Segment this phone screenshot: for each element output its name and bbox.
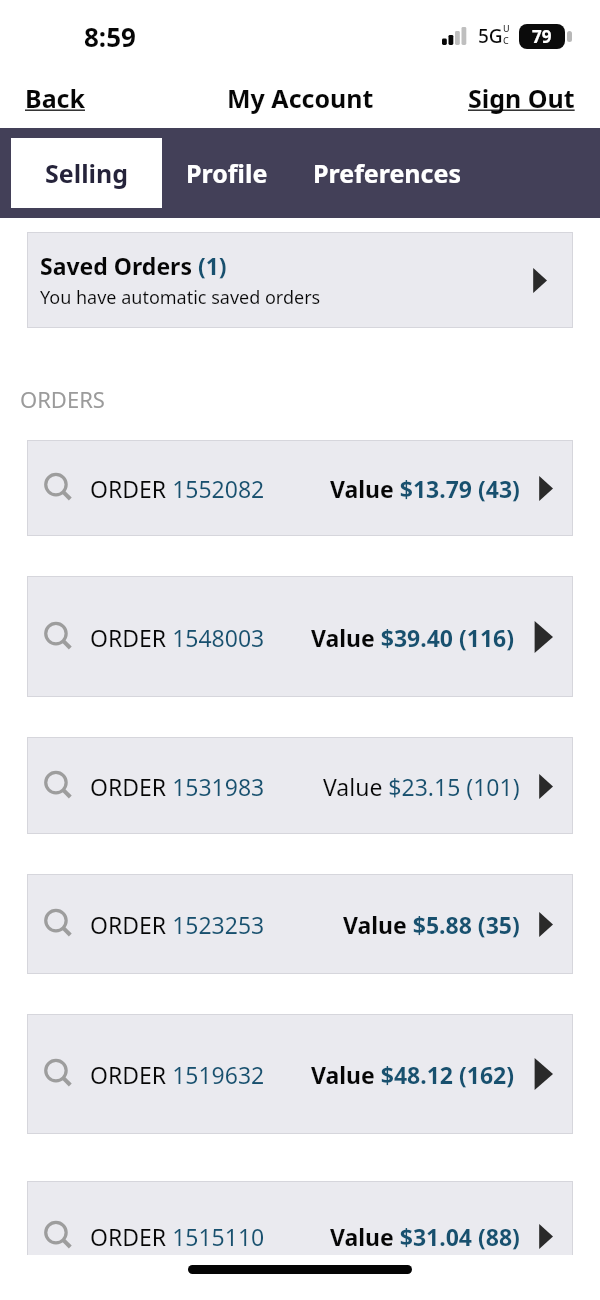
button[interactable]: Search order <box>27 1014 573 1134</box>
button[interactable]: Sign Out <box>460 77 600 119</box>
staticText: ORDER 1515110 <box>90 1221 265 1252</box>
button[interactable]: Search order <box>27 874 573 974</box>
staticText: Value $48.12 (162) <box>311 1059 515 1090</box>
other: Open details <box>538 1224 553 1249</box>
button[interactable]: Search order <box>27 737 573 834</box>
staticText: 5G <box>478 23 503 49</box>
staticText: U <box>503 22 510 34</box>
other: Search order <box>42 1219 76 1253</box>
staticText: ORDER 1552082 <box>90 473 265 504</box>
staticText: Preferences <box>313 156 461 190</box>
staticText: ORDERS <box>20 384 105 414</box>
staticText: Value $31.04 (88) <box>330 1221 520 1252</box>
staticText: ORDER 1531983 <box>90 771 265 802</box>
staticText: My Account <box>227 81 374 115</box>
staticText: C <box>503 34 509 46</box>
button[interactable]: Back <box>0 77 94 119</box>
other: Search order <box>42 769 76 803</box>
other: Open details <box>532 268 547 293</box>
button[interactable]: Saved Orders (1) <box>27 232 573 328</box>
staticText: You have automatic saved orders <box>40 285 321 310</box>
staticText: 8:59 <box>84 19 136 54</box>
button[interactable]: Search order <box>27 1181 573 1291</box>
staticText: ORDER 1519632 <box>90 1059 265 1090</box>
other: Search order <box>42 1057 76 1091</box>
other: Open details <box>538 912 553 937</box>
staticText: Selling <box>45 156 129 190</box>
button[interactable]: Selling <box>11 138 162 208</box>
staticText: Value $23.15 (101) <box>323 771 520 802</box>
button[interactable]: Preferences <box>292 138 482 208</box>
other: Open details <box>533 621 553 653</box>
staticText: Value $13.79 (43) <box>330 473 520 504</box>
staticText: Value $39.40 (116) <box>311 622 515 653</box>
staticText: Back <box>25 81 86 115</box>
other: Search order <box>42 471 76 505</box>
other: Search order <box>42 620 76 654</box>
staticText: Saved Orders (1) <box>40 250 227 281</box>
other: Search order <box>42 907 76 941</box>
button[interactable]: Search order <box>27 440 573 536</box>
button[interactable]: Profile <box>162 138 292 208</box>
other: Open details <box>533 1058 553 1090</box>
button[interactable]: Search order <box>27 576 573 697</box>
staticText: ORDER 1523253 <box>90 909 265 940</box>
staticText: Sign Out <box>468 81 575 115</box>
other: Open details <box>538 476 553 501</box>
staticText: Profile <box>186 156 268 190</box>
staticText: Value $5.88 (35) <box>343 909 520 940</box>
other: Open details <box>538 774 553 799</box>
staticText: ORDER 1548003 <box>90 622 265 653</box>
staticText: 79 <box>532 25 552 48</box>
